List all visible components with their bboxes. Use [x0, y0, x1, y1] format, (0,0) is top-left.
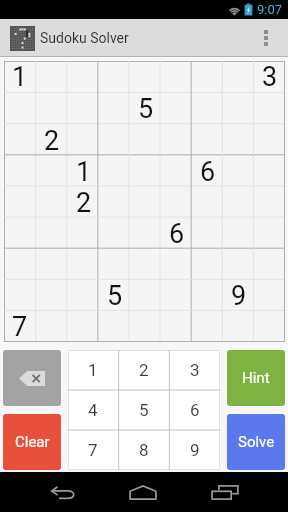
- button[interactable]: [99, 311, 130, 342]
- button[interactable]: [223, 311, 254, 342]
- button[interactable]: [4, 218, 36, 249]
- button[interactable]: 1: [4, 61, 36, 93]
- button[interactable]: [68, 125, 99, 156]
- button[interactable]: Backspace: [3, 350, 61, 406]
- button[interactable]: [223, 249, 254, 280]
- button[interactable]: [161, 280, 192, 311]
- button[interactable]: [99, 125, 130, 156]
- button[interactable]: [254, 125, 285, 156]
- staticText: 9: [231, 280, 247, 311]
- button[interactable]: [99, 156, 130, 187]
- button[interactable]: [223, 125, 254, 156]
- button[interactable]: [254, 93, 285, 125]
- button[interactable]: 5: [130, 93, 161, 125]
- button[interactable]: [4, 187, 36, 218]
- button[interactable]: [192, 125, 223, 156]
- button[interactable]: [161, 187, 192, 218]
- button[interactable]: 1: [68, 350, 118, 390]
- button[interactable]: Hint: [227, 350, 285, 406]
- button[interactable]: 3: [254, 61, 285, 93]
- button[interactable]: [130, 311, 161, 342]
- button[interactable]: [4, 156, 36, 187]
- button[interactable]: 5: [99, 280, 130, 311]
- button[interactable]: [192, 61, 223, 93]
- button[interactable]: [223, 61, 254, 93]
- button[interactable]: 2: [68, 187, 99, 218]
- button[interactable]: [223, 187, 254, 218]
- button[interactable]: [130, 218, 161, 249]
- button[interactable]: [4, 93, 36, 125]
- button[interactable]: [36, 156, 68, 187]
- button[interactable]: [99, 218, 130, 249]
- button[interactable]: [130, 156, 161, 187]
- button[interactable]: 2: [118, 350, 169, 390]
- button[interactable]: [36, 93, 68, 125]
- button[interactable]: [36, 187, 68, 218]
- button[interactable]: [254, 280, 285, 311]
- button[interactable]: [130, 280, 161, 311]
- button[interactable]: 1: [68, 156, 99, 187]
- button[interactable]: 2: [36, 125, 68, 156]
- button[interactable]: [68, 218, 99, 249]
- button[interactable]: [36, 61, 68, 93]
- button[interactable]: [99, 61, 130, 93]
- button[interactable]: Home: [111, 472, 175, 512]
- staticText: 4: [88, 400, 98, 420]
- button[interactable]: [68, 93, 99, 125]
- button[interactable]: Back: [31, 472, 95, 512]
- button[interactable]: 7: [68, 430, 118, 470]
- button[interactable]: [192, 93, 223, 125]
- button[interactable]: [223, 156, 254, 187]
- button[interactable]: [161, 125, 192, 156]
- button[interactable]: Solve: [227, 414, 285, 470]
- button[interactable]: [68, 280, 99, 311]
- button[interactable]: [254, 311, 285, 342]
- button[interactable]: 5: [118, 390, 169, 430]
- button[interactable]: [254, 218, 285, 249]
- button[interactable]: [192, 218, 223, 249]
- button[interactable]: [130, 61, 161, 93]
- button[interactable]: 7: [4, 311, 36, 342]
- button[interactable]: [99, 93, 130, 125]
- button[interactable]: [68, 61, 99, 93]
- button[interactable]: [4, 125, 36, 156]
- button[interactable]: [223, 218, 254, 249]
- button[interactable]: 8: [118, 430, 169, 470]
- button[interactable]: 9: [169, 430, 220, 470]
- button[interactable]: Recent apps: [193, 472, 257, 512]
- button[interactable]: 6: [192, 156, 223, 187]
- button[interactable]: [161, 61, 192, 93]
- button[interactable]: More options: [244, 19, 288, 57]
- button[interactable]: [36, 280, 68, 311]
- button[interactable]: [99, 249, 130, 280]
- button[interactable]: [223, 93, 254, 125]
- button[interactable]: 9: [223, 280, 254, 311]
- button[interactable]: [161, 249, 192, 280]
- button[interactable]: [36, 218, 68, 249]
- button[interactable]: 3: [169, 350, 220, 390]
- button[interactable]: 6: [161, 218, 192, 249]
- button[interactable]: [254, 156, 285, 187]
- button[interactable]: [68, 311, 99, 342]
- button[interactable]: [4, 280, 36, 311]
- button[interactable]: Clear: [3, 414, 61, 470]
- button[interactable]: [254, 249, 285, 280]
- button[interactable]: [254, 187, 285, 218]
- button[interactable]: [36, 311, 68, 342]
- button[interactable]: [192, 187, 223, 218]
- button[interactable]: [192, 280, 223, 311]
- button[interactable]: [161, 156, 192, 187]
- button[interactable]: [192, 311, 223, 342]
- button[interactable]: [36, 249, 68, 280]
- button[interactable]: [161, 311, 192, 342]
- button[interactable]: [4, 249, 36, 280]
- button[interactable]: [99, 187, 130, 218]
- button[interactable]: [130, 187, 161, 218]
- button[interactable]: 4: [68, 390, 118, 430]
- button[interactable]: [68, 249, 99, 280]
- button[interactable]: [130, 249, 161, 280]
- button[interactable]: 6: [169, 390, 220, 430]
- button[interactable]: [161, 93, 192, 125]
- button[interactable]: [192, 249, 223, 280]
- button[interactable]: [130, 125, 161, 156]
